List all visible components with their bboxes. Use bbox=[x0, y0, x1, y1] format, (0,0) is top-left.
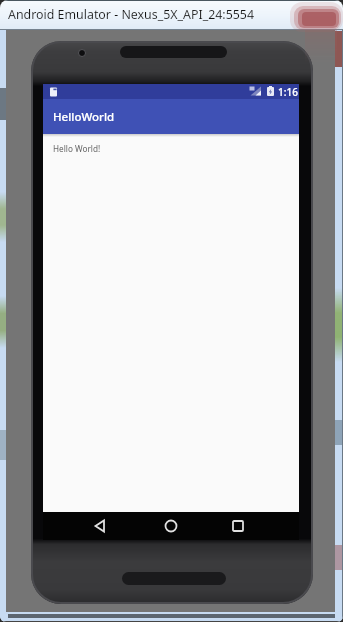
staticText: HelloWorld bbox=[53, 109, 115, 125]
staticText: 1:16 bbox=[278, 85, 298, 99]
staticText: Android Emulator - Nexus_5X_API_24:5554 bbox=[8, 6, 255, 23]
button[interactable] bbox=[129, 512, 214, 540]
button[interactable] bbox=[214, 512, 299, 540]
staticText: Hello World! bbox=[53, 143, 101, 154]
button[interactable] bbox=[43, 512, 129, 540]
button[interactable]: HelloWorld bbox=[43, 99, 299, 134]
